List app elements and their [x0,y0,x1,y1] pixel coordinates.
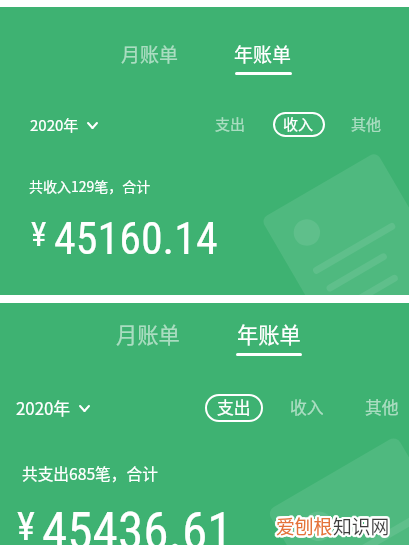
staticText: 爱刨根知识网 [275,513,388,540]
staticText: 爱刨根知识网 [277,513,390,540]
staticText: 爱刨根知识网 [277,511,390,538]
staticText: ¥ [31,215,47,254]
staticText: 收入 [283,113,314,135]
button[interactable]: 月账单 [109,30,191,78]
button[interactable]: 月账单 [103,307,193,360]
staticText: 爱刨根知识网 [278,512,391,539]
staticText: 45436.61 [42,501,233,545]
button[interactable]: 年账单 [222,30,304,78]
button[interactable]: 年账单 [224,307,314,360]
staticText: 年账单 [237,318,301,349]
staticText: 爱刨根知识网 [275,511,388,538]
button[interactable]: 其他 [351,113,382,135]
staticText: ¥ [17,504,35,545]
staticText: 爱刨根知识网 [277,514,390,541]
staticText: 支出 [217,395,251,419]
staticText: 爱刨根知识网 [276,513,389,540]
staticText: 爱刨根知识网 [274,513,387,540]
staticText: 2020年 [16,396,71,420]
staticText: 爱刨根知识网 [277,512,390,539]
staticText: 45160.14 [54,213,218,265]
button[interactable]: 其他 [365,395,399,419]
staticText: 知识网 [333,512,390,539]
staticText: 共收入129笔，合计 [29,176,151,196]
staticText: 爱刨根知识网 [277,510,390,537]
staticText: 月账单 [121,40,179,68]
staticText: 年账单 [234,40,292,68]
staticText: 爱刨根知识网 [278,513,391,540]
staticText: 爱刨根知识网 [275,514,388,541]
staticText: 爱刨根知识网 [276,511,389,538]
staticText: 爱刨根知识网 [276,514,389,541]
button[interactable]: 2020年 [20,106,108,144]
staticText: 爱刨根 [276,512,333,539]
staticText: 爱刨根知识网 [274,512,387,539]
staticText: 月账单 [116,318,180,349]
staticText: 爱刨根知识网 [275,510,388,537]
staticText: 共支出685笔，合计 [22,462,158,485]
staticText: 爱刨根知识网 [278,511,391,538]
staticText: 爱刨根知识网 [276,510,389,537]
button[interactable]: 收入 [290,395,324,419]
other: Choose year [79,405,90,412]
button[interactable] [205,394,263,422]
button[interactable]: 支出 [215,113,246,135]
staticText: 2020年 [30,114,79,136]
button[interactable]: 2020年 [5,387,101,429]
other: Choose year [87,122,98,129]
button[interactable] [273,112,325,137]
staticText: 爱刨根知识网 [275,512,388,539]
staticText: 爱刨根知识网 [274,511,387,538]
